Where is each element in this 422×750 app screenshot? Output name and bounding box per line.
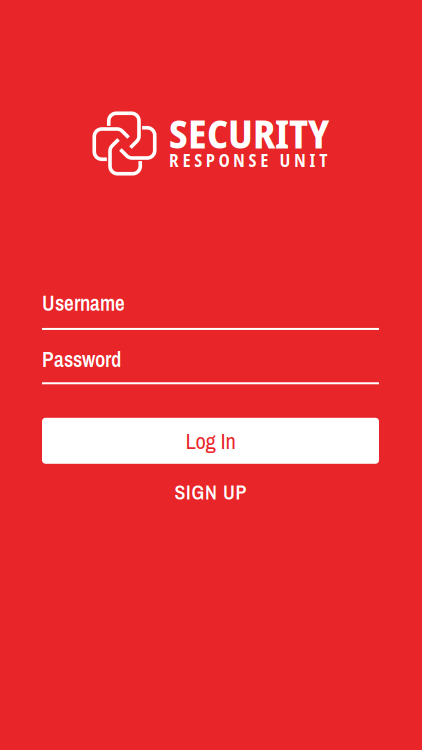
- staticText: SIGN UP: [174, 479, 246, 506]
- staticText: SECURITY: [169, 106, 329, 160]
- staticText: Username: [42, 289, 125, 317]
- button[interactable]: Password: [42, 345, 379, 384]
- staticText: RESPONSE UNIT: [169, 148, 327, 172]
- button[interactable]: Username: [42, 289, 379, 330]
- staticText: Log In: [185, 425, 235, 456]
- button[interactable]: SIGN UP: [42, 479, 379, 505]
- staticText: Password: [42, 345, 121, 374]
- button[interactable]: Log In: [42, 418, 379, 464]
